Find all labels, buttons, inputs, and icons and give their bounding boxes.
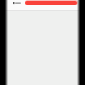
button[interactable] [25, 1, 77, 5]
